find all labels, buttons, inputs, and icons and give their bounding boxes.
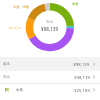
button[interactable]: 食費 — [0, 84, 100, 96]
staticText: -¥98,139 — [72, 61, 90, 67]
staticText: 支出 — [3, 75, 10, 79]
staticText: ¥25,183 — [74, 87, 90, 93]
staticText: コンビニ — [8, 26, 22, 30]
staticText: 水道・光熱 — [13, 5, 29, 9]
button[interactable]: 支出 — [0, 71, 100, 83]
staticText: ¥98,139 — [74, 74, 90, 80]
staticText: 食費 — [16, 88, 23, 92]
other: Details — [93, 88, 95, 92]
other: Details — [93, 62, 95, 66]
staticText: 食費 — [72, 2, 79, 6]
staticText: 支出 — [46, 20, 54, 25]
staticText: 収支 — [3, 62, 10, 66]
button[interactable]: 収支 — [0, 57, 100, 71]
staticText: ¥98,139 — [41, 26, 59, 32]
other: Details — [93, 75, 95, 79]
